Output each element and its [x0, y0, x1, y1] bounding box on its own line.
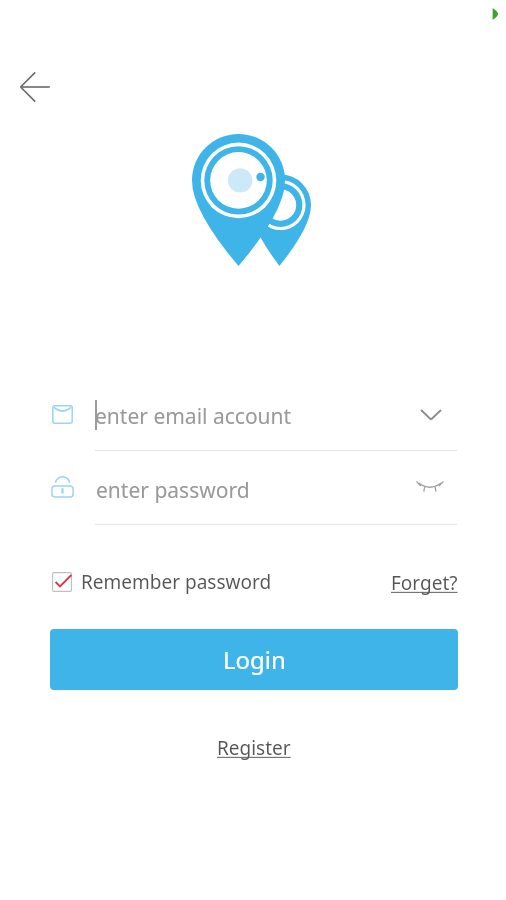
staticText: Login	[223, 643, 286, 676]
button[interactable]: Remember password	[52, 569, 272, 595]
staticText: enter email account	[95, 402, 292, 431]
staticText: enter password	[96, 476, 250, 505]
staticText: Register	[217, 735, 291, 761]
button[interactable]: Back	[4, 63, 54, 111]
staticText: Forget?	[391, 570, 458, 596]
button[interactable]: Forget?	[391, 570, 458, 596]
button[interactable]: Register	[217, 735, 291, 765]
button[interactable]: Choose account	[414, 400, 448, 430]
staticText: Remember password	[81, 569, 272, 595]
button[interactable]: Show password	[410, 474, 448, 500]
button[interactable]: Login	[50, 629, 458, 690]
